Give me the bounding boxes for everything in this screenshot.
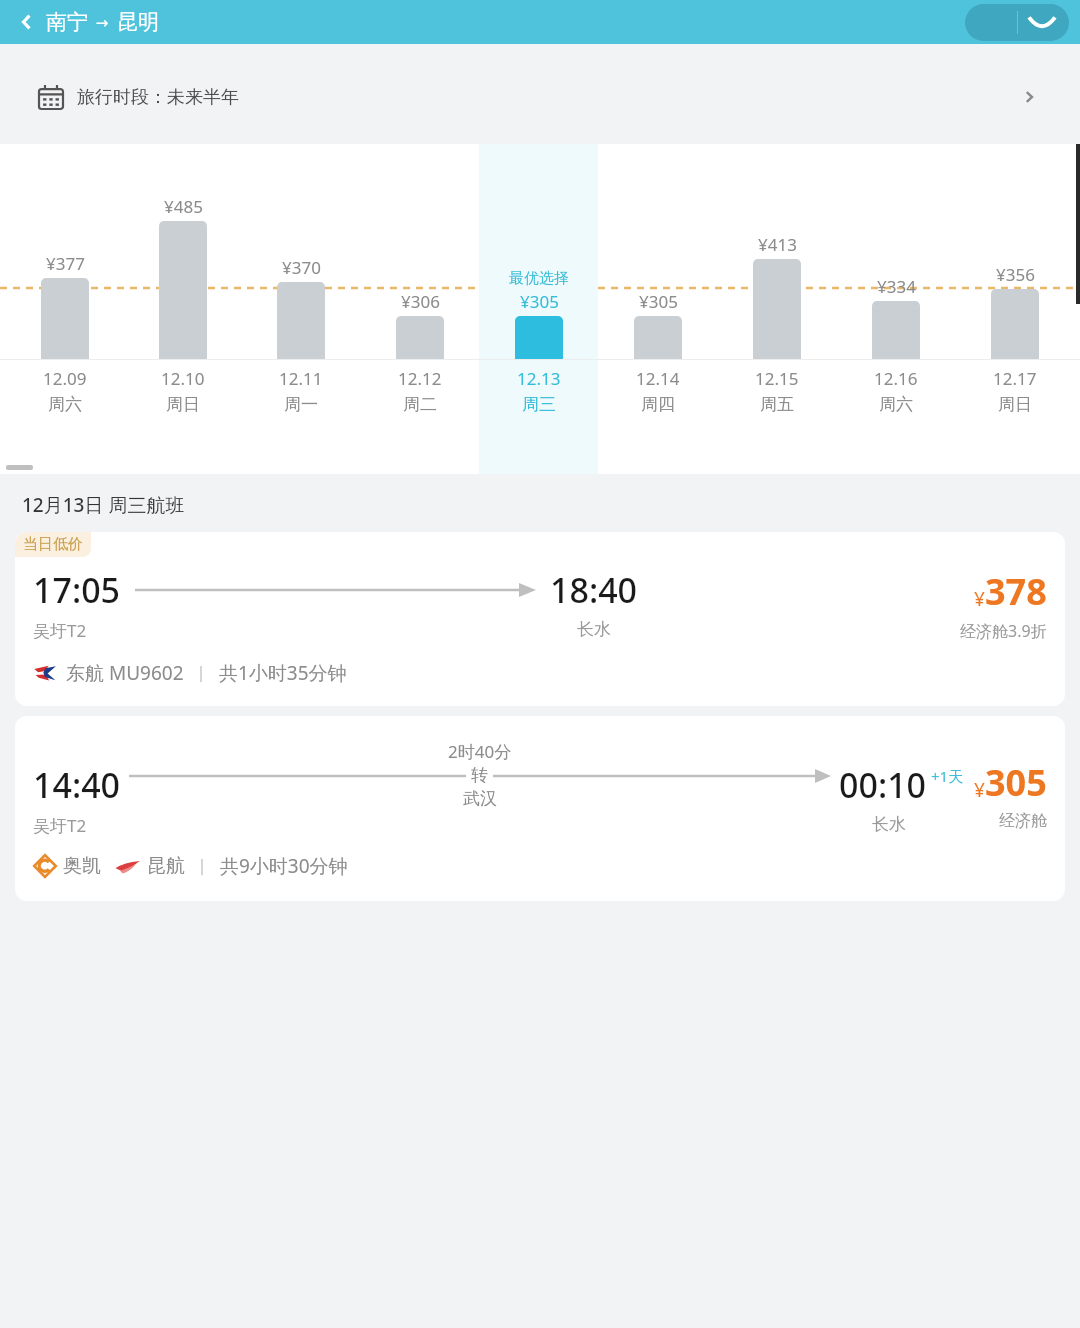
staticText: 17:05 <box>33 567 121 613</box>
staticText: ¥305 <box>639 290 678 313</box>
staticText: ¥485 <box>164 195 203 218</box>
staticText: 00:10 <box>839 762 927 808</box>
staticText: 12.09 <box>43 367 87 390</box>
staticText: 12.17 <box>993 367 1037 390</box>
staticText: 武汉 <box>463 788 497 809</box>
button[interactable]: ¥370 <box>242 144 360 474</box>
button[interactable]: 最优选择 <box>479 144 598 474</box>
staticText: 12.11 <box>279 367 323 390</box>
button[interactable]: 14:40 <box>15 716 1065 901</box>
staticText: ¥306 <box>401 290 440 313</box>
staticText: 东航 MU9602 <box>66 660 184 686</box>
button[interactable]: ¥334 <box>836 144 955 474</box>
button[interactable]: ¥413 <box>717 144 836 474</box>
staticText: 昆明 <box>117 9 159 35</box>
staticText: 12月13日 周三航班 <box>22 492 185 518</box>
staticText: 奥凯 <box>63 854 101 878</box>
staticText: 305 <box>985 758 1047 807</box>
button[interactable]: ¥377 <box>6 144 124 474</box>
staticText: 旅行时段：未来半年 <box>77 86 239 109</box>
staticText: ¥377 <box>46 252 85 275</box>
staticText: 周六 <box>48 394 82 415</box>
staticText: 转 <box>471 765 488 786</box>
staticText: → <box>88 12 117 32</box>
staticText: 12.14 <box>636 367 680 390</box>
staticText: 经济舱 <box>999 811 1047 831</box>
staticText: 12.10 <box>161 367 205 390</box>
staticText: 共9小时30分钟 <box>220 853 348 879</box>
staticText: +1天 <box>931 766 964 786</box>
staticText: 12.16 <box>874 367 918 390</box>
staticText: 当日低价 <box>23 535 83 554</box>
staticText: 周二 <box>403 394 437 415</box>
staticText: ¥305 <box>520 290 559 313</box>
button[interactable]: ¥306 <box>360 144 479 474</box>
staticText: ¥413 <box>758 233 797 256</box>
button[interactable]: 旅行时段：未来半年 <box>17 64 1063 130</box>
staticText: 吴圩T2 <box>33 619 87 642</box>
staticText: ¥356 <box>996 263 1035 286</box>
staticText: 丨 <box>185 855 220 878</box>
staticText: 长水 <box>872 814 906 835</box>
staticText: ¥ <box>974 777 985 803</box>
staticText: 周一 <box>284 394 318 415</box>
staticText: ¥334 <box>877 275 916 298</box>
staticText: 18:40 <box>550 567 638 613</box>
staticText: 丨 <box>184 662 219 685</box>
staticText: 周三 <box>522 394 556 415</box>
staticText: 12.13 <box>517 367 561 390</box>
staticText: 周日 <box>166 394 200 415</box>
staticText: 南宁 <box>46 9 88 35</box>
button[interactable]: 当日低价 <box>15 532 1065 706</box>
staticText: 12.12 <box>398 367 442 390</box>
staticText: 378 <box>985 567 1047 616</box>
button[interactable]: Back <box>10 7 40 37</box>
staticText: 12.15 <box>755 367 799 390</box>
staticText: 2时40分 <box>448 740 512 763</box>
button[interactable]: ¥305 <box>598 144 717 474</box>
staticText: 周四 <box>641 394 675 415</box>
staticText: 周日 <box>998 394 1032 415</box>
button[interactable]: ¥485 <box>124 144 242 474</box>
staticText: 14:40 <box>33 762 121 808</box>
staticText: 吴圩T2 <box>33 814 87 837</box>
staticText: ¥370 <box>282 256 321 279</box>
staticText: ¥ <box>974 586 985 612</box>
staticText: 最优选择 <box>509 269 569 288</box>
button[interactable]: ¥356 <box>955 144 1074 474</box>
staticText: 昆航 <box>147 854 185 878</box>
staticText: 经济舱3.9折 <box>960 620 1047 642</box>
staticText: 共1小时35分钟 <box>219 660 347 686</box>
staticText: 周六 <box>879 394 913 415</box>
staticText: 长水 <box>577 619 611 640</box>
staticText: 周五 <box>760 394 794 415</box>
